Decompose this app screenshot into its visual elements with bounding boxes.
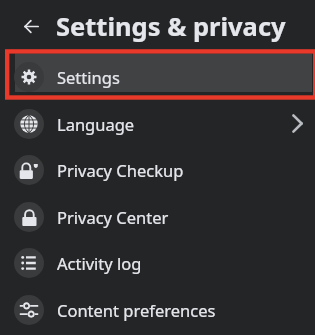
staticText: Privacy Checkup xyxy=(57,159,184,181)
staticText: Settings xyxy=(57,66,120,88)
staticText: Language xyxy=(57,113,135,135)
button[interactable]: Privacy Checkup xyxy=(0,147,315,193)
button[interactable]: Language xyxy=(0,100,315,147)
button[interactable]: Privacy Center xyxy=(0,193,315,240)
button[interactable]: Content preferences xyxy=(0,286,315,333)
button[interactable]: Back xyxy=(0,3,46,50)
button[interactable]: Settings xyxy=(0,54,315,100)
staticText: Activity log xyxy=(57,252,142,274)
staticText: Privacy Center xyxy=(57,206,169,228)
staticText: Content preferences xyxy=(57,299,216,321)
button[interactable]: Activity log xyxy=(0,240,315,286)
staticText: Settings & privacy xyxy=(56,9,286,44)
